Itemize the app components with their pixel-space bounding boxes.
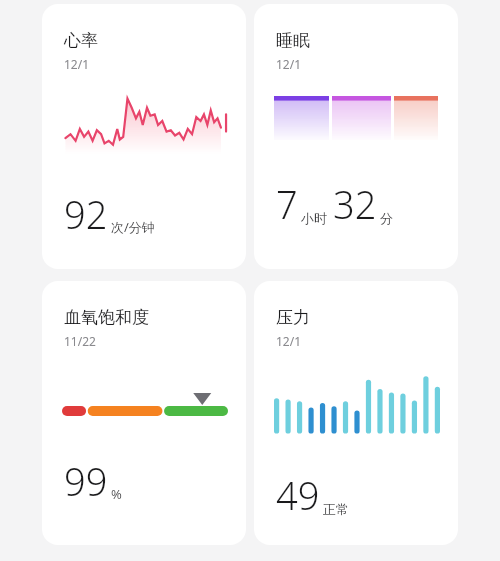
staticText: 11/22 [64, 333, 96, 349]
staticText: 12/1 [64, 56, 90, 72]
staticText: 睡眠 [276, 30, 310, 51]
staticText: 正常 [323, 501, 349, 517]
staticText: 99 [64, 455, 108, 507]
staticText: 12/1 [276, 56, 302, 72]
staticText: 血氧饱和度 [64, 307, 149, 328]
button[interactable]: Heart rate card [42, 4, 246, 269]
staticText: 49 [276, 469, 320, 521]
button[interactable]: Sleep card [254, 4, 458, 269]
staticText: 32 [333, 178, 377, 230]
staticText: % [111, 485, 122, 503]
staticText: 次/分钟 [111, 218, 155, 236]
staticText: 12/1 [276, 333, 302, 349]
staticText: 小时 [301, 210, 327, 226]
staticText: 压力 [276, 307, 310, 328]
staticText: 92 [64, 188, 108, 240]
staticText: 心率 [64, 30, 98, 51]
button[interactable]: Blood oxygen card [42, 281, 246, 545]
button[interactable]: Stress card [254, 281, 458, 545]
staticText: 分 [380, 210, 393, 226]
staticText: 7 [276, 178, 298, 230]
